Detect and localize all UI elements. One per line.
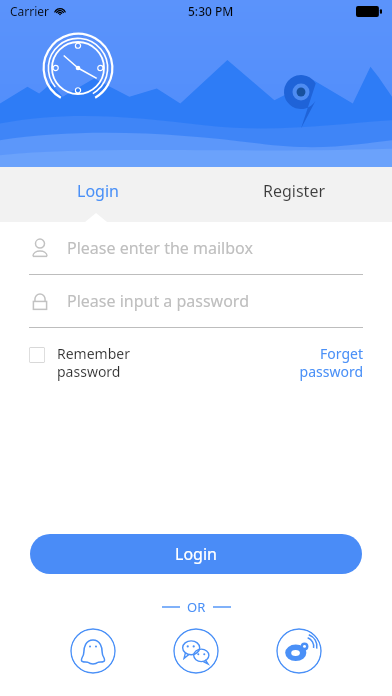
other: Email [29, 237, 51, 259]
staticText: Login [175, 543, 217, 565]
button[interactable]: Forget password [299, 344, 363, 381]
staticText: Please input a password [67, 290, 250, 312]
staticText: Login [77, 180, 119, 202]
button[interactable]: QQ login [70, 628, 116, 674]
staticText: Carrier [10, 3, 50, 19]
button[interactable]: Register [196, 167, 392, 222]
staticText: 5:30 PM [188, 3, 234, 19]
staticText: Register [263, 180, 326, 202]
button[interactable]: Weibo login [276, 628, 322, 674]
button[interactable]: Login [0, 167, 196, 222]
staticText: Remember password [57, 344, 130, 381]
button[interactable]: Password [29, 275, 363, 327]
other: Password [29, 290, 51, 312]
staticText: Please enter the mailbox [67, 237, 253, 259]
button[interactable]: Login [30, 534, 362, 574]
button[interactable]: WeChat login [173, 628, 219, 674]
button[interactable]: Remember password [29, 344, 130, 381]
button[interactable]: Email [29, 222, 363, 274]
staticText: OR [187, 598, 206, 616]
staticText: Forget password [299, 344, 363, 381]
